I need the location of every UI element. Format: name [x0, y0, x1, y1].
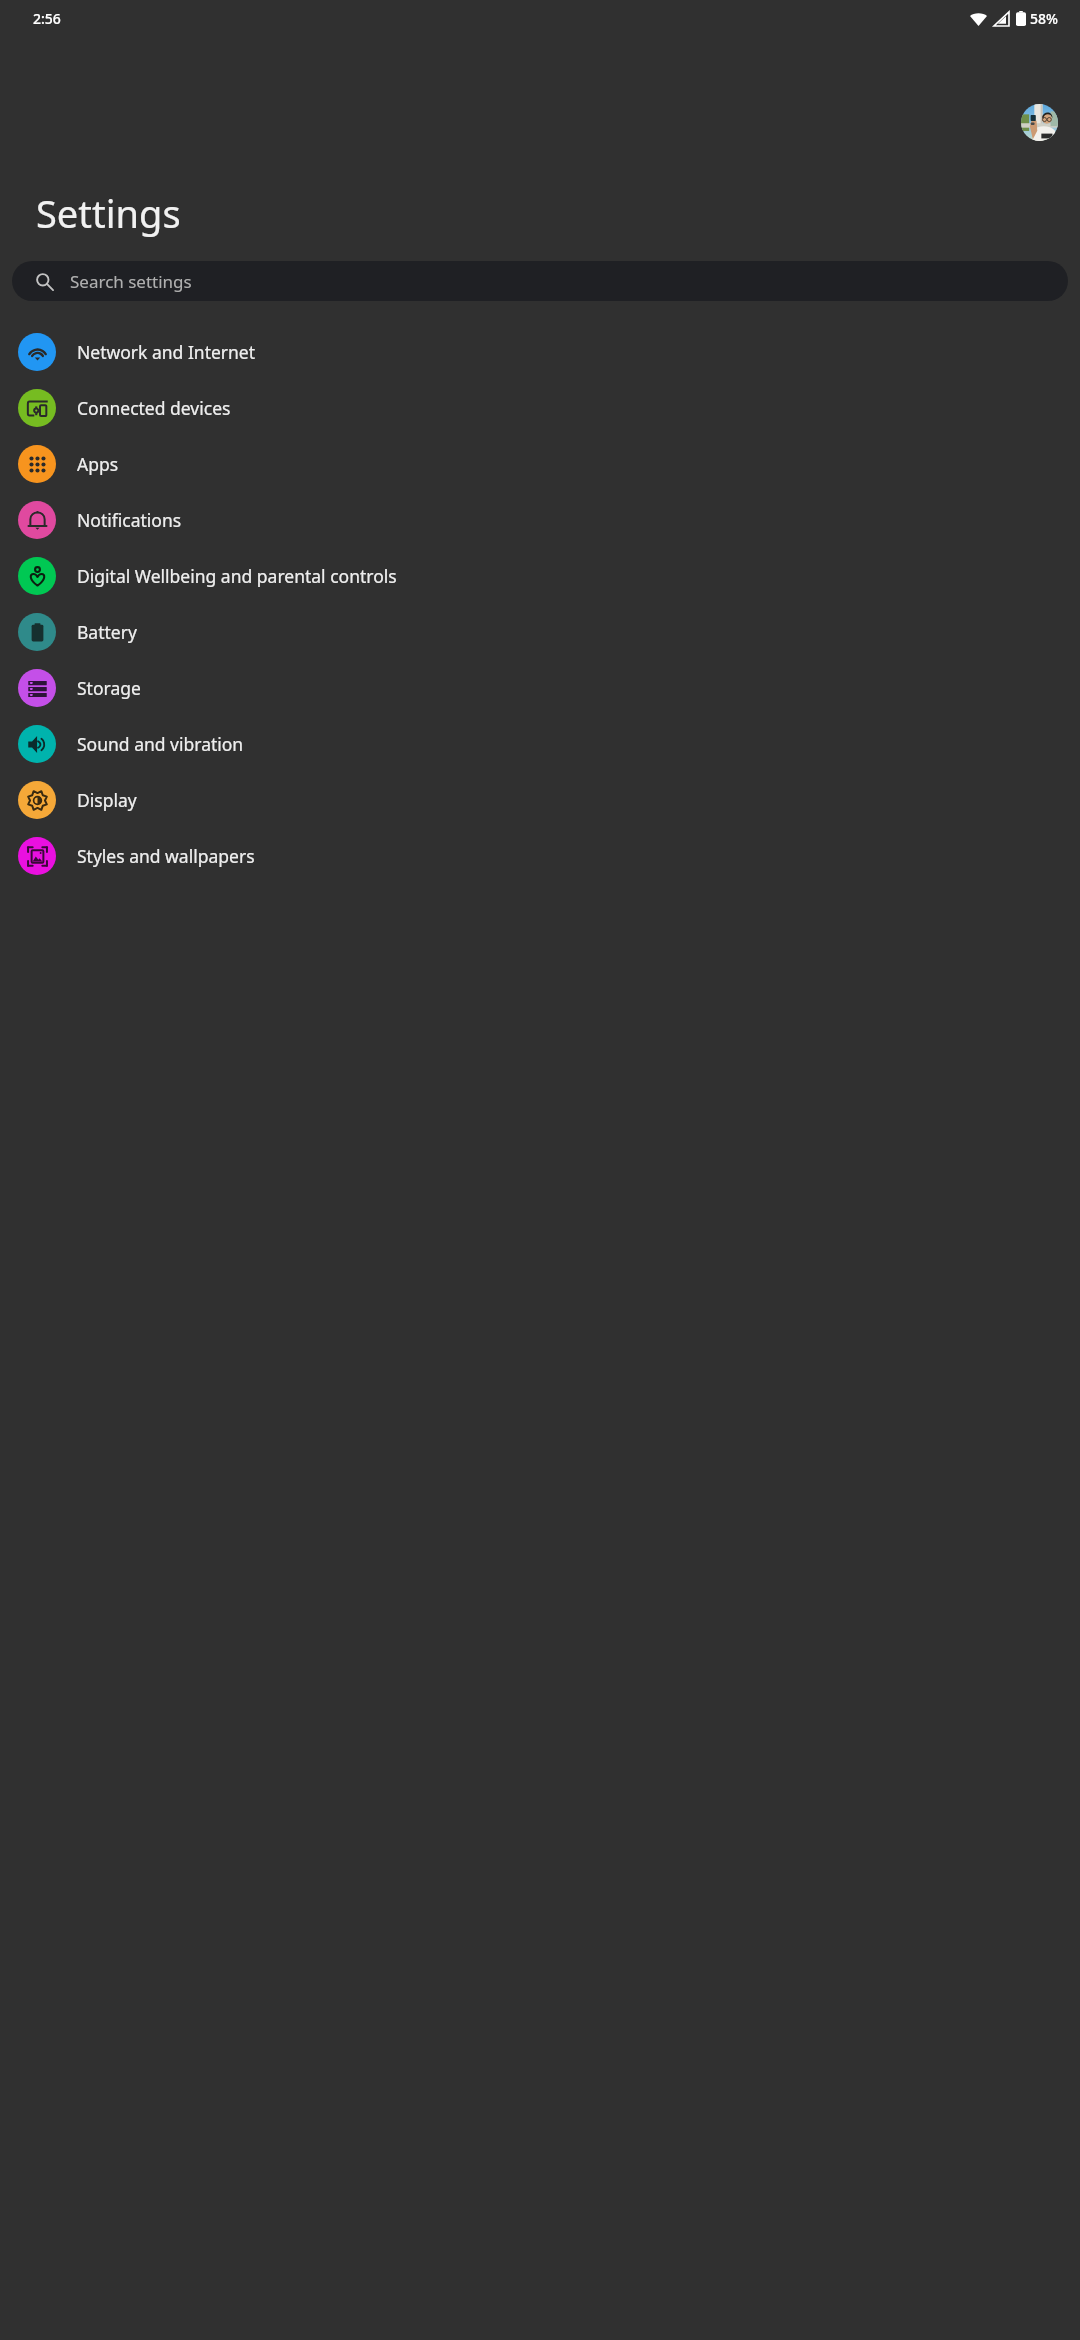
staticText: Apps [77, 452, 119, 476]
button[interactable]: Storage [0, 660, 1080, 716]
staticText: 58% [1030, 9, 1058, 28]
button[interactable]: Digital Wellbeing and parental controls [0, 548, 1080, 604]
staticText: Settings [36, 187, 181, 239]
staticText: Display [77, 788, 137, 812]
staticText: Digital Wellbeing and parental controls [77, 564, 397, 588]
staticText: Sound and vibration [77, 732, 244, 756]
button[interactable]: Sound and vibration [0, 716, 1080, 772]
button[interactable]: Network and Internet [0, 324, 1080, 380]
button[interactable]: Notifications [0, 492, 1080, 548]
button[interactable]: Display [0, 772, 1080, 828]
staticText: Battery [77, 620, 137, 644]
staticText: Notifications [77, 508, 182, 532]
staticText: Network and Internet [77, 340, 256, 364]
staticText: Connected devices [77, 396, 231, 420]
staticText: Search settings [70, 270, 192, 293]
staticText: Styles and wallpapers [77, 844, 255, 868]
staticText: 2:56 [33, 9, 61, 28]
staticText: Storage [77, 676, 141, 700]
button[interactable]: Account profile [1021, 104, 1058, 141]
button[interactable]: Connected devices [0, 380, 1080, 436]
button[interactable]: Apps [0, 436, 1080, 492]
button[interactable]: Battery [0, 604, 1080, 660]
button[interactable]: Styles and wallpapers [0, 828, 1080, 884]
button[interactable]: Search settings [12, 261, 1068, 301]
